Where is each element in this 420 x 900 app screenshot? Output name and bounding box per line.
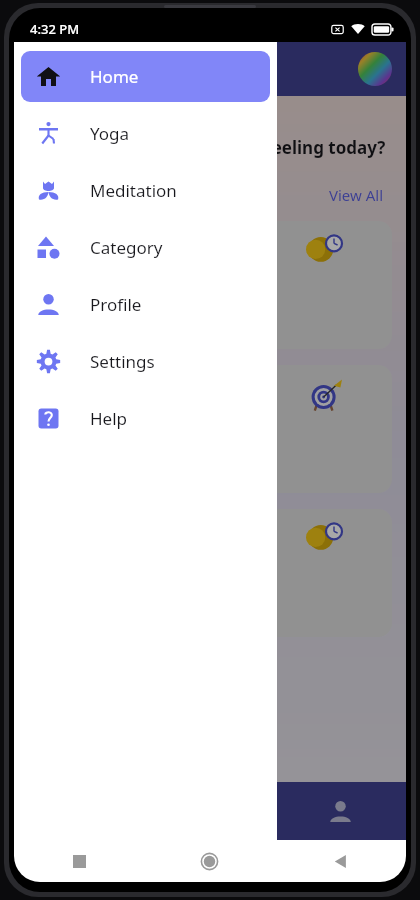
button[interactable]: Yoga bbox=[21, 108, 270, 159]
staticText: Category bbox=[90, 236, 163, 259]
button[interactable]: Help bbox=[21, 393, 270, 444]
staticText: Help bbox=[90, 407, 128, 430]
button[interactable]: Back bbox=[275, 840, 406, 882]
button[interactable]: Profile bbox=[275, 782, 406, 840]
button[interactable]: Home bbox=[144, 840, 275, 882]
staticText: Profile bbox=[90, 293, 142, 316]
button[interactable]: Profile bbox=[21, 279, 270, 330]
button[interactable]: Profile avatar bbox=[358, 52, 392, 86]
staticText: Meditation bbox=[90, 179, 177, 202]
staticText: Yoga bbox=[90, 122, 130, 145]
button[interactable]: Settings bbox=[21, 336, 270, 387]
button[interactable]: Category bbox=[21, 222, 270, 273]
staticText: Home bbox=[90, 65, 139, 88]
button[interactable]: Recent apps bbox=[14, 840, 144, 882]
button[interactable]: Meditation bbox=[21, 165, 270, 216]
staticText: 4:32 PM bbox=[30, 20, 80, 38]
button[interactable]: View All bbox=[329, 185, 384, 205]
staticText: Settings bbox=[90, 350, 155, 373]
button[interactable]: Sleep bbox=[28, 221, 392, 349]
button[interactable]: Focus bbox=[28, 365, 392, 493]
staticText: How are you feeling today? bbox=[155, 136, 386, 159]
button[interactable]: Calm bbox=[28, 509, 392, 637]
staticText: Sleep bbox=[44, 290, 90, 313]
button[interactable]: Home bbox=[21, 51, 270, 102]
